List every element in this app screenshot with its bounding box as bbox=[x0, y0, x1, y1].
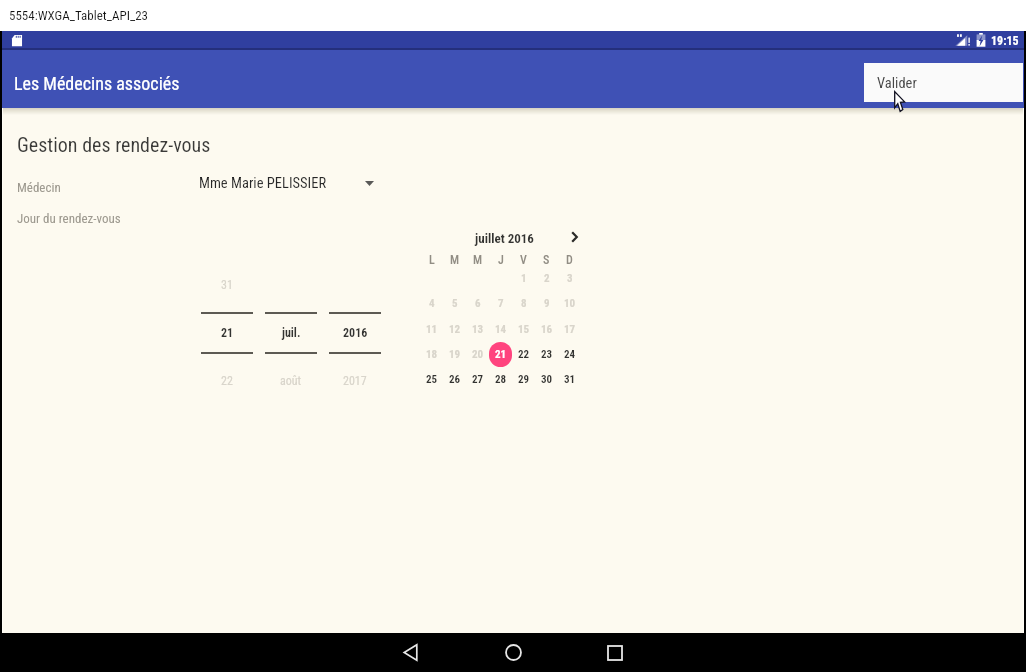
button[interactable]: 19 bbox=[443, 342, 466, 367]
staticText: 29 bbox=[518, 373, 530, 386]
button[interactable]: 13 bbox=[466, 317, 489, 342]
button[interactable]: 26 bbox=[443, 367, 466, 392]
staticText: 12 bbox=[449, 323, 461, 336]
button[interactable]: 30 bbox=[535, 367, 558, 392]
staticText: 7 bbox=[498, 297, 504, 310]
staticText: 3 bbox=[567, 272, 573, 285]
staticText: L bbox=[429, 253, 435, 267]
button[interactable]: 31 bbox=[195, 276, 259, 392]
staticText: Jour du rendez-vous bbox=[17, 211, 121, 226]
staticText: 17 bbox=[564, 323, 576, 336]
staticText: 14 bbox=[495, 323, 507, 336]
staticText: 25 bbox=[426, 373, 438, 386]
button[interactable]: 14 bbox=[489, 317, 512, 342]
staticText: Médecin bbox=[17, 180, 61, 195]
staticText: M bbox=[473, 253, 483, 267]
button[interactable]: 29 bbox=[512, 367, 535, 392]
staticText: 2016 bbox=[343, 326, 368, 340]
staticText: 31 bbox=[221, 278, 233, 292]
staticText: 13 bbox=[472, 323, 484, 336]
staticText: D bbox=[566, 253, 573, 267]
staticText: 11 bbox=[426, 323, 438, 336]
staticText: 1 bbox=[521, 272, 527, 285]
button[interactable]: 17 bbox=[558, 317, 581, 342]
staticText: S bbox=[543, 253, 550, 267]
staticText: août bbox=[280, 374, 302, 388]
button[interactable]: 10 bbox=[558, 291, 581, 316]
staticText: Mme Marie PELISSIER bbox=[199, 175, 327, 192]
button[interactable]: 16 bbox=[535, 317, 558, 342]
staticText: 8 bbox=[521, 297, 527, 310]
button[interactable]: 7 bbox=[489, 291, 512, 316]
staticText: 19 bbox=[449, 348, 461, 361]
button[interactable]: 12 bbox=[443, 317, 466, 342]
button[interactable]: 20 bbox=[466, 342, 489, 367]
staticText: 18 bbox=[426, 348, 438, 361]
button[interactable]: 9 bbox=[535, 291, 558, 316]
staticText: 16 bbox=[541, 323, 553, 336]
staticText: J bbox=[498, 253, 504, 267]
staticText: 22 bbox=[221, 374, 233, 388]
staticText: M bbox=[450, 253, 460, 267]
staticText: 20 bbox=[472, 348, 484, 361]
button[interactable]: 23 bbox=[535, 342, 558, 367]
button[interactable]: 8 bbox=[512, 291, 535, 316]
staticText: 2017 bbox=[343, 374, 367, 388]
button[interactable]: Accueil bbox=[483, 633, 543, 672]
button[interactable]: Mme Marie PELISSIER bbox=[199, 175, 374, 192]
staticText: 19:15 bbox=[991, 34, 1019, 48]
button[interactable]: 1 bbox=[512, 266, 535, 291]
staticText: V bbox=[520, 253, 527, 267]
staticText: Gestion des rendez-vous bbox=[17, 133, 211, 156]
button[interactable]: 25 bbox=[420, 367, 443, 392]
staticText: 2 bbox=[544, 272, 550, 285]
button[interactable]: 27 bbox=[466, 367, 489, 392]
button[interactable]: 2 bbox=[535, 266, 558, 291]
button[interactable]: Valider bbox=[864, 63, 1023, 102]
button[interactable]: 15 bbox=[512, 317, 535, 342]
staticText: 21 bbox=[221, 326, 234, 340]
button[interactable]: 5 bbox=[443, 291, 466, 316]
staticText: 10 bbox=[564, 297, 576, 310]
button[interactable]: 2016 bbox=[323, 276, 387, 392]
staticText: 6 bbox=[475, 297, 481, 310]
staticText: juillet 2016 bbox=[475, 231, 534, 246]
staticText: 24 bbox=[564, 348, 576, 361]
staticText: 28 bbox=[495, 373, 507, 386]
button[interactable]: 22 bbox=[512, 342, 535, 367]
button[interactable]: 31 bbox=[558, 367, 581, 392]
staticText: 31 bbox=[564, 373, 576, 386]
staticText: 9 bbox=[544, 297, 550, 310]
button[interactable]: 3 bbox=[558, 266, 581, 291]
button[interactable]: Mois suivant bbox=[563, 226, 585, 248]
staticText: 30 bbox=[541, 373, 553, 386]
button[interactable]: 11 bbox=[420, 317, 443, 342]
staticText: 21 bbox=[495, 348, 507, 361]
button[interactable]: 18 bbox=[420, 342, 443, 367]
staticText: 23 bbox=[541, 348, 553, 361]
button[interactable]: 21 bbox=[489, 342, 512, 367]
staticText: 26 bbox=[449, 373, 461, 386]
button[interactable]: juil. bbox=[259, 276, 323, 392]
staticText: Valider bbox=[877, 75, 917, 92]
staticText: 15 bbox=[518, 323, 530, 336]
staticText: juil. bbox=[282, 326, 301, 340]
button[interactable]: 24 bbox=[558, 342, 581, 367]
staticText: 4 bbox=[429, 297, 435, 310]
staticText: 27 bbox=[472, 373, 484, 386]
staticText: Les Médecins associés bbox=[14, 73, 180, 94]
staticText: 22 bbox=[518, 348, 530, 361]
button[interactable]: Applications récentes bbox=[585, 633, 645, 672]
button[interactable]: Retour bbox=[380, 633, 440, 672]
staticText: 5 bbox=[452, 297, 458, 310]
button[interactable]: 28 bbox=[489, 367, 512, 392]
button[interactable]: 6 bbox=[466, 291, 489, 316]
button[interactable]: 4 bbox=[420, 291, 443, 316]
staticText: 5554:WXGA_Tablet_API_23 bbox=[9, 8, 148, 23]
